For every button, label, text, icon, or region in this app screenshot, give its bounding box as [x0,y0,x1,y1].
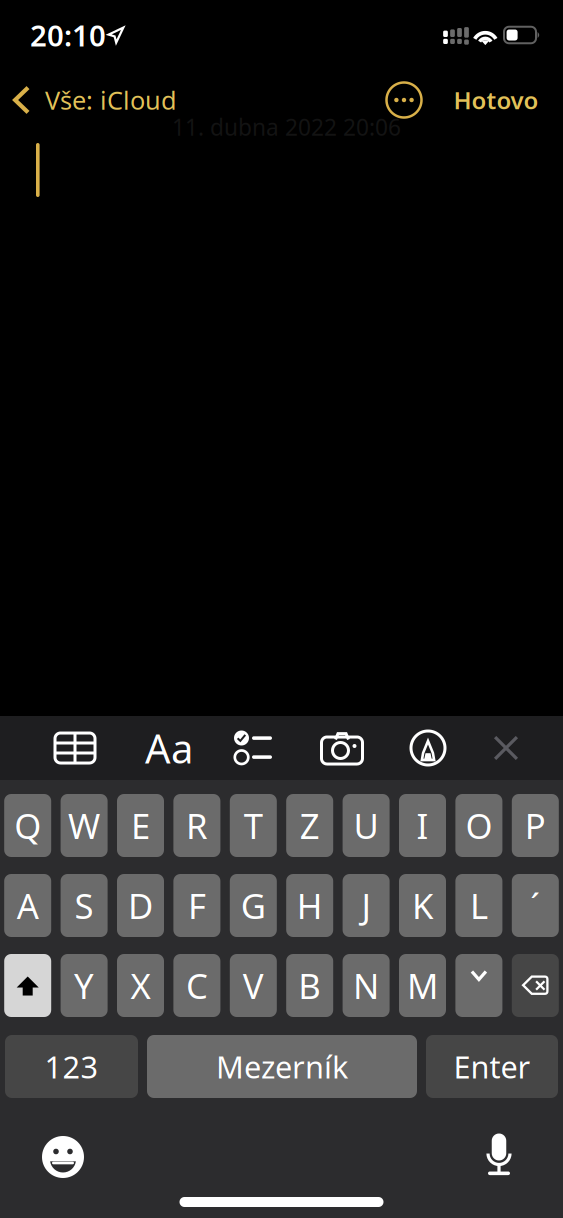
button[interactable]: Hide keyboard [473,716,539,780]
button[interactable]: Z [286,794,333,857]
button[interactable]: J [343,874,390,937]
staticText: 123 [44,1046,98,1087]
button[interactable]: P [512,794,559,857]
staticText: J [362,882,371,928]
staticText: R [186,802,208,848]
button[interactable]: L [455,874,502,937]
button[interactable]: W [61,794,108,857]
button[interactable]: S [61,874,108,937]
button[interactable]: R [173,794,220,857]
staticText: S [75,882,94,928]
staticText: B [298,962,321,1008]
button[interactable]: Checklist [220,716,286,780]
staticText: L [470,882,488,928]
button[interactable]: Emoji keyboard [30,1127,96,1187]
button[interactable]: Text format [136,716,202,780]
button[interactable]: U [343,794,390,857]
button[interactable]: Dictation [466,1126,532,1186]
staticText: D [128,882,153,928]
staticText: P [525,802,546,848]
staticText: X [130,962,150,1008]
staticText: M [407,962,438,1008]
button[interactable]: F [173,874,220,937]
staticText: ´ [530,882,540,928]
staticText: N [353,962,379,1008]
staticText: Q [14,802,41,848]
staticText: F [188,882,206,928]
staticText: E [131,802,150,848]
button[interactable]: V [230,954,277,1017]
button[interactable]: O [455,794,502,857]
staticText: G [241,882,266,928]
button[interactable]: D [117,874,164,937]
button[interactable]: G [230,874,277,937]
staticText: Hotovo [453,84,538,116]
button[interactable]: T [230,794,277,857]
button[interactable]: Table [42,716,108,780]
staticText: Z [300,802,320,848]
button[interactable]: H [286,874,333,937]
staticText: I [416,802,428,848]
staticText: T [244,802,263,848]
staticText: Mezerník [216,1046,348,1087]
button[interactable]: 123 [5,1035,138,1098]
staticText: H [297,882,323,928]
button[interactable]: K [399,874,446,937]
staticText: K [412,882,433,928]
button[interactable]: Y [61,954,108,1017]
button[interactable]: B [286,954,333,1017]
staticText: W [68,802,100,848]
button[interactable]: ´ [512,874,559,937]
button[interactable]: Q [4,794,51,857]
button[interactable]: N [343,954,390,1017]
button[interactable]: Shift [4,954,51,1017]
button[interactable]: Camera [309,716,375,780]
staticText: 11. dubna 2022 20:06 [172,112,401,142]
button[interactable]: More [378,76,430,124]
staticText: U [354,802,379,848]
button[interactable]: A [4,874,51,937]
button[interactable]: Enter [426,1035,558,1098]
staticText: Y [74,962,94,1008]
staticText: Enter [453,1046,530,1087]
staticText: 20:10 [30,15,106,54]
button[interactable]: Vše: iCloud [0,76,230,124]
staticText: Vše: iCloud [45,83,177,117]
button[interactable]: X [117,954,164,1017]
staticText: V [243,962,264,1008]
button[interactable]: Mezerník [147,1035,417,1098]
staticText: O [465,802,492,848]
button[interactable]: Hotovo [443,76,549,124]
button[interactable]: Markup [395,716,461,780]
button[interactable]: E [117,794,164,857]
button[interactable]: M [399,954,446,1017]
button[interactable]: Caron [455,954,502,1017]
staticText: A [17,882,39,928]
staticText: Aa [145,721,193,774]
button[interactable]: Backspace [512,954,559,1017]
button[interactable]: I [399,794,446,857]
button[interactable]: C [173,954,220,1017]
staticText: C [186,962,208,1008]
